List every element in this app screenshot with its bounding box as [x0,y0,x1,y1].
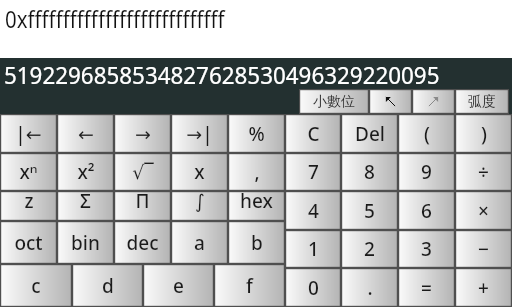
button[interactable]: c [0,264,72,307]
staticText: Del [355,121,385,147]
button[interactable]: Next [412,89,455,114]
staticText: xⁿ [19,159,38,185]
button[interactable]: dec [114,221,171,264]
button[interactable]: 8 [341,153,398,191]
button[interactable]: Previous [369,89,412,114]
staticText: − [478,236,489,262]
button[interactable]: ∫ [171,191,228,221]
button[interactable]: Σ [57,191,114,221]
button[interactable]: a [171,221,228,264]
staticText: d [102,273,114,299]
staticText: e [173,273,184,299]
button[interactable]: 7 [285,153,341,191]
staticText: √‾ [132,159,154,185]
button[interactable]: − [455,230,512,268]
staticText: 3 [421,236,432,262]
staticText: % [248,121,265,147]
button[interactable]: hex [228,191,285,221]
button[interactable]: 小數位 [299,89,369,114]
button[interactable]: ← [57,114,114,153]
staticText: × [478,198,489,224]
staticText: 5192296858534827628530496329220095 [4,58,440,91]
button[interactable]: . [341,268,398,307]
button[interactable]: f [214,264,285,307]
button[interactable]: √‾ [114,153,171,191]
staticText: c [31,273,41,299]
staticText: f [246,273,253,299]
staticText: 7 [308,159,319,185]
staticText: Σ [80,188,91,214]
staticText: ← [78,123,94,145]
button[interactable]: 1 [285,230,341,268]
staticText: 0 [308,275,319,301]
button[interactable]: C [285,114,341,153]
button[interactable]: ( [398,114,455,153]
button[interactable]: d [72,264,143,307]
button[interactable]: x² [57,153,114,191]
button[interactable]: Π [114,191,171,221]
staticText: . [367,275,373,301]
button[interactable]: 9 [398,153,455,191]
button[interactable]: 弧度 [455,89,509,114]
button[interactable]: e [143,264,214,307]
button[interactable]: bin [57,221,114,264]
button[interactable]: ) [455,114,512,153]
button[interactable]: ÷ [455,153,512,191]
button[interactable]: 4 [285,191,341,230]
staticText: = [421,275,432,301]
staticText: 8 [364,159,375,185]
staticText: ) [481,121,487,147]
button[interactable]: 3 [398,230,455,268]
staticText: hex [240,188,273,214]
staticText: 5 [364,198,375,224]
button[interactable]: oct [0,221,57,264]
staticText: dec [126,230,159,256]
staticText: x [194,159,205,185]
button[interactable]: →| [171,114,228,153]
staticText: a [194,230,205,256]
staticText: , [254,159,260,185]
staticText: oct [14,230,43,256]
button[interactable]: + [455,268,512,307]
staticText: 6 [421,198,432,224]
staticText: |← [15,121,42,147]
staticText: x² [77,159,95,185]
button[interactable]: % [228,114,285,153]
button[interactable]: Del [341,114,398,153]
button[interactable]: b [228,221,285,264]
button[interactable]: xⁿ [0,153,57,191]
staticText: 9 [421,159,432,185]
staticText: Π [135,188,150,214]
button[interactable]: 6 [398,191,455,230]
staticText: → [135,123,151,145]
button[interactable]: 2 [341,230,398,268]
staticText: 小數位 [313,93,355,111]
button[interactable]: x [171,153,228,191]
button[interactable]: , [228,153,285,191]
button[interactable]: |← [0,114,57,153]
staticText: b [251,230,263,256]
staticText: ∫ [195,190,205,212]
button[interactable]: = [398,268,455,307]
button[interactable]: → [114,114,171,153]
staticText: 2 [364,236,375,262]
staticText: z [24,188,34,214]
staticText: 弧度 [468,93,496,111]
staticText: C [307,121,320,147]
staticText: ( [424,121,430,147]
button[interactable]: 5 [341,191,398,230]
button[interactable]: z [0,191,57,221]
staticText: + [478,275,489,301]
staticText: bin [71,230,100,256]
staticText: 4 [308,198,319,224]
staticText: 1 [308,236,319,262]
button[interactable]: × [455,191,512,230]
staticText: ÷ [478,159,489,185]
staticText: →| [186,121,213,147]
button[interactable]: 0 [285,268,341,307]
staticText: 0xffffffffffffffffffffffffffff [5,3,225,34]
